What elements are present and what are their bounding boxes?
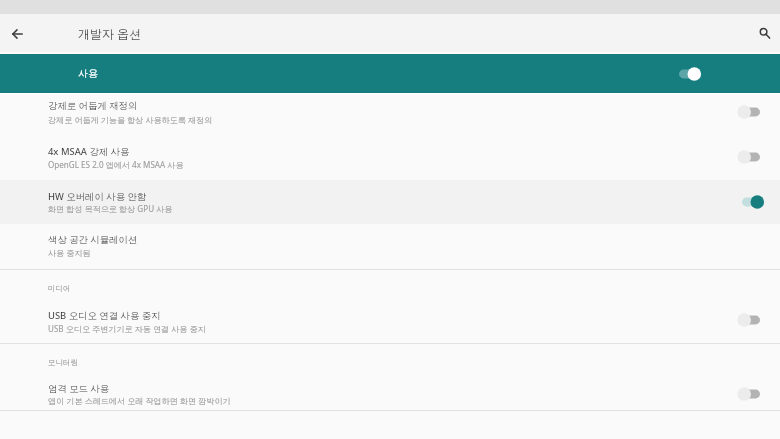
button[interactable]: 4x MSAA 강제 사용: [0, 136, 780, 180]
staticText: 화면 합성 목적으로 항상 GPU 사용: [48, 203, 173, 214]
staticText: 개발자 옵션: [78, 25, 142, 41]
staticText: 4x MSAA 강제 사용: [48, 145, 130, 158]
staticText: USB 오디오 연결 사용 중지: [48, 309, 161, 322]
button[interactable]: HW 오버레이 사용 안함: [0, 180, 780, 224]
button[interactable]: 4x MSAA 강제 사용: [734, 144, 768, 170]
button[interactable]: HW 오버레이 사용 안함: [734, 189, 768, 215]
staticText: 미디어: [48, 284, 71, 293]
staticText: 색상 공간 시뮬레이션: [48, 233, 138, 246]
staticText: 사용 중지됨: [48, 247, 91, 258]
staticText: 사용: [78, 67, 98, 80]
button[interactable]: 강제로 어둡게 재정의: [0, 92, 780, 136]
button[interactable]: 엄격 모드 사용: [734, 381, 768, 407]
staticText: OpenGL ES 2.0 앱에서 4x MSAA 사용: [48, 159, 184, 170]
staticText: HW 오버레이 사용 안함: [48, 190, 147, 203]
button[interactable]: USB 오디오 연결 사용 중지: [0, 301, 780, 343]
button[interactable]: USB 오디오 연결 사용 중지: [734, 307, 768, 333]
staticText: 강제로 어둡게 기능을 항상 사용하도록 재정의: [48, 114, 213, 125]
button[interactable]: 사용: [0, 54, 780, 93]
button[interactable]: 사용: [671, 61, 705, 87]
button[interactable]: 엄격 모드 사용: [0, 372, 780, 410]
staticText: 모니터링: [48, 358, 78, 367]
staticText: 엄격 모드 사용: [48, 382, 110, 395]
staticText: 앱이 기본 스레드에서 오래 작업하면 화면 깜박이기: [48, 395, 231, 406]
button[interactable]: 색상 공간 시뮬레이션: [0, 224, 780, 269]
button[interactable]: Back: [3, 20, 31, 48]
button[interactable]: Search: [750, 20, 778, 48]
staticText: 강제로 어둡게 재정의: [48, 99, 138, 112]
staticText: USB 오디오 주변기기로 자동 연결 사용 중지: [48, 323, 206, 334]
button[interactable]: 강제로 어둡게 재정의: [734, 99, 768, 125]
